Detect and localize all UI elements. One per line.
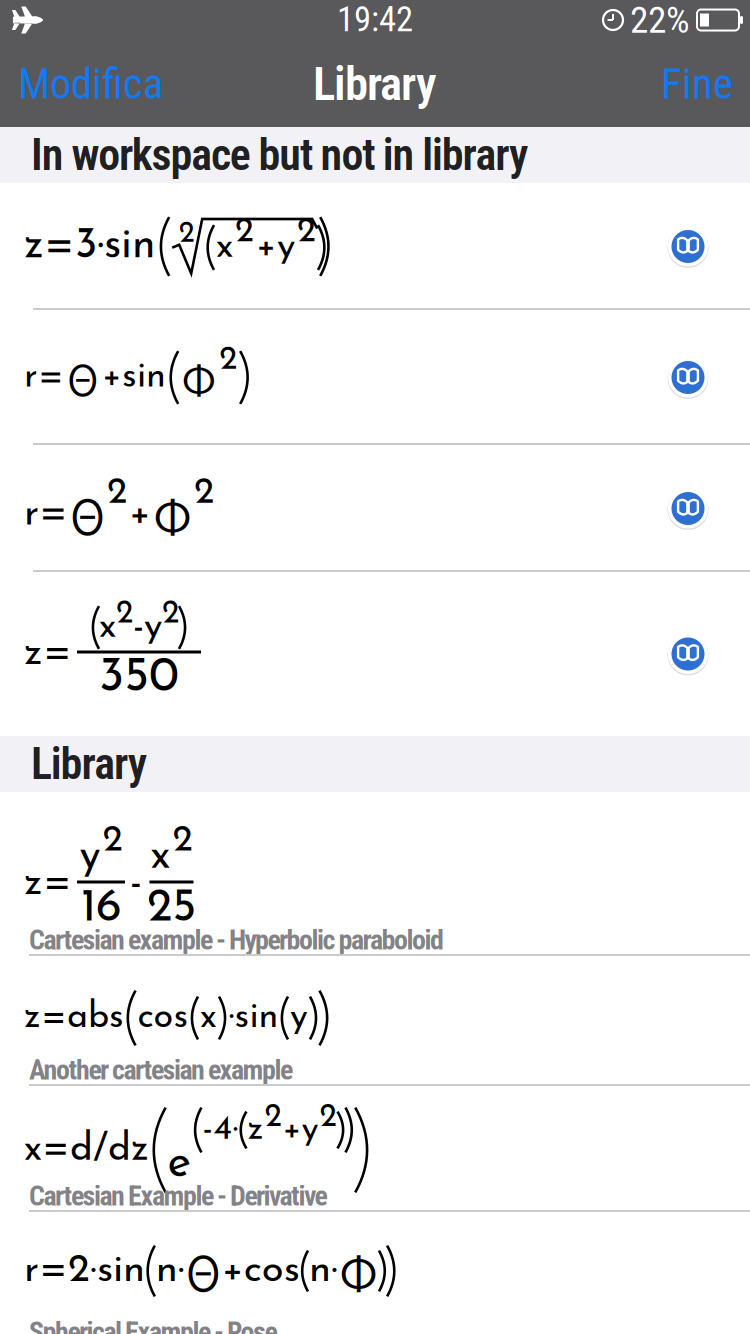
staticText: Θ [70,482,105,548]
staticText: r=2·sin [24,1251,145,1291]
staticText: +cos [222,1251,300,1291]
staticText: x [150,836,170,878]
button[interactable]: Add to library [666,224,710,268]
staticText: -y [133,609,162,646]
staticText: z= [24,634,72,674]
staticText: z=3·sin [24,225,156,268]
staticText: x [99,609,116,646]
staticText: Cartesian example - Hyperbolic paraboloi… [29,924,444,956]
staticText: 19:42 [337,0,413,40]
staticText: r= [24,359,64,395]
staticText: Φ [339,1238,378,1305]
staticText: +sin [102,359,166,395]
staticText: Φ [153,482,192,548]
staticText: y [290,1000,308,1036]
staticText: x [216,229,233,266]
staticText: +y [256,229,295,266]
button[interactable]: r=2·sin [0,1212,750,1334]
staticText: 16 [81,885,121,932]
staticText: Spherical Example - Rose [29,1316,277,1334]
staticText: cos [137,1000,188,1036]
staticText: Cartesian Example - Derivative [29,1180,327,1212]
staticText: 22% [630,0,690,42]
button[interactable]: r= [0,445,750,572]
button[interactable]: Add to library [666,355,710,399]
staticText: 2 [172,822,192,860]
staticText: +y [282,1113,318,1147]
staticText: r= [24,494,68,534]
staticText: In workspace but not in library [31,129,528,181]
staticText: Modifica [18,59,163,109]
staticText: Fine [661,59,733,109]
staticText: x [200,1000,217,1036]
button[interactable]: z= [0,792,750,956]
staticText: 2 [235,215,254,250]
staticText: Library [313,57,437,111]
button[interactable]: Fine [661,59,733,109]
staticText: 2 [194,475,214,512]
staticText: 2 [107,475,127,512]
staticText: e [168,1142,192,1188]
staticText: + [129,494,151,534]
button[interactable]: Add to library [666,632,710,676]
staticText: - [130,864,142,904]
staticText: 2 [102,822,122,860]
staticText: n· [156,1251,185,1291]
staticText: Another cartesian example [29,1054,293,1086]
staticText: Library [31,738,147,790]
staticText: 2 [319,1102,336,1134]
button[interactable]: x=d/dz [0,1086,750,1212]
staticText: Θ [186,1238,221,1305]
staticText: 2 [219,344,237,377]
button[interactable]: Modifica [18,59,163,109]
staticText: 2 [179,220,195,249]
staticText: -4· [202,1113,238,1147]
staticText: 2 [116,598,133,630]
button[interactable]: r= [0,310,750,445]
staticText: x=d/dz [24,1131,149,1169]
staticText: 350 [99,654,179,702]
button[interactable]: Add to library [666,486,710,530]
button[interactable]: z=3·sin [0,183,750,310]
staticText: ·sin [228,1000,278,1036]
staticText: z= [24,864,72,904]
staticText: Φ [181,348,216,408]
button[interactable]: z= [0,572,750,736]
staticText: Θ [67,348,99,408]
button[interactable]: z=abs [0,956,750,1086]
staticText: 2 [162,598,179,630]
staticText: 2 [297,215,316,250]
staticText: z=abs [24,1000,124,1036]
staticText: n· [309,1251,338,1291]
staticText: 25 [147,885,196,932]
staticText: y [79,836,100,878]
staticText: z [247,1113,263,1147]
staticText: 2 [264,1102,281,1134]
